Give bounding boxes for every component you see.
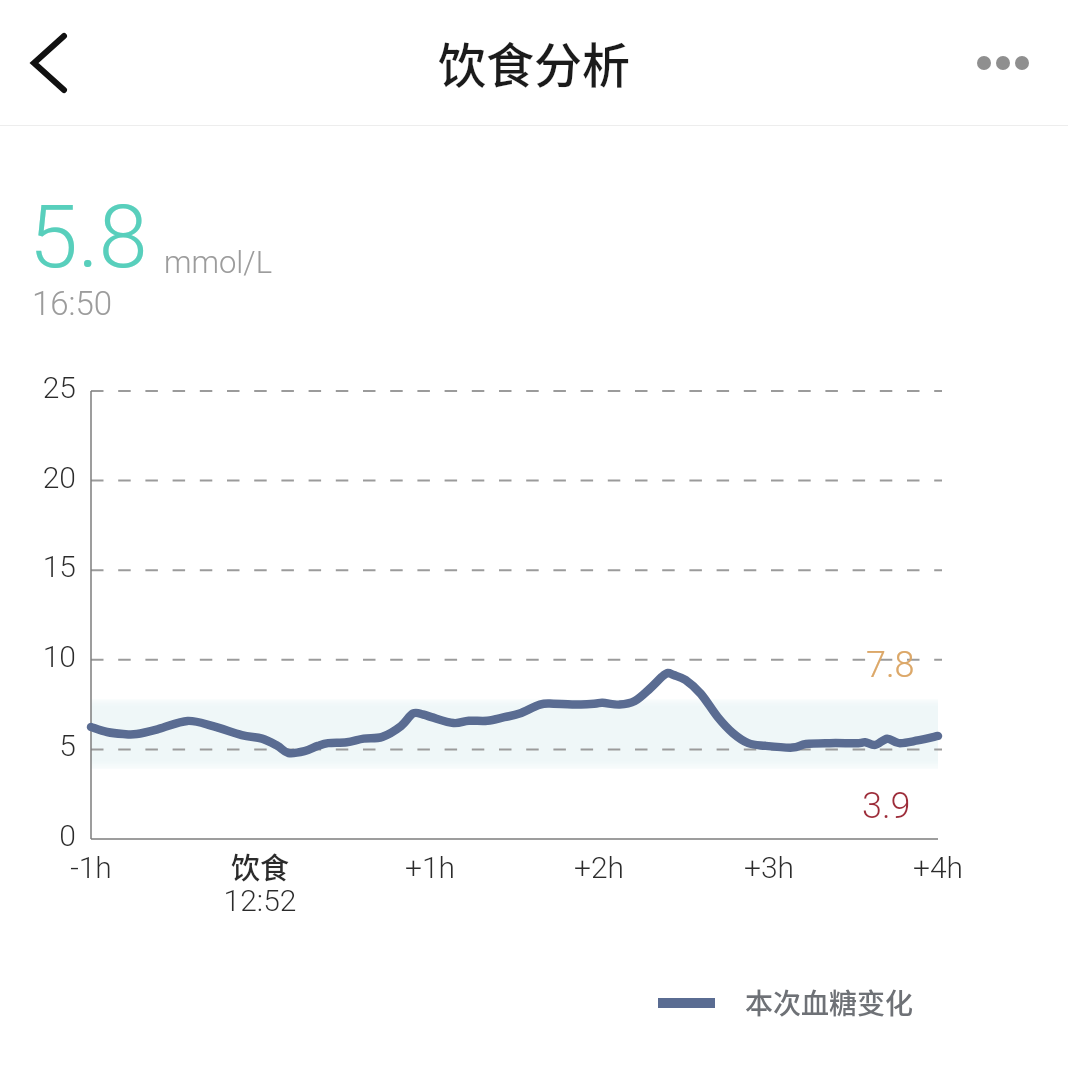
staticText: 饮食分析 [438, 27, 631, 97]
staticText: +4h [858, 850, 1018, 885]
staticText: 25 [0, 370, 76, 405]
staticText: 本次血糖变化 [745, 982, 914, 1023]
staticText: -1h [11, 850, 171, 885]
staticText: +3h [689, 850, 849, 885]
staticText: 3.9 [862, 785, 911, 827]
staticText: mmol/L [164, 244, 272, 280]
staticText: 饮食 [180, 845, 340, 887]
staticText: 12:52 [180, 883, 340, 918]
staticText: 5 [0, 728, 76, 763]
staticText: 20 [0, 460, 76, 495]
staticText: 16:50 [32, 284, 113, 323]
staticText: 0 [0, 818, 76, 853]
button[interactable]: 本次血糖变化 [658, 982, 914, 1023]
staticText: 7.8 [866, 644, 915, 686]
staticText: 15 [0, 549, 76, 584]
staticText: 10 [0, 639, 76, 674]
button[interactable]: More options [955, 28, 1051, 98]
staticText: 5.8 [29, 185, 148, 288]
staticText: +1h [350, 850, 510, 885]
button[interactable]: Back [14, 28, 84, 98]
staticText: +2h [519, 850, 679, 885]
